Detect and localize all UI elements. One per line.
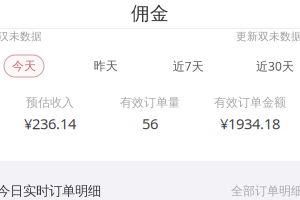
staticText: 昨天 (94, 59, 118, 73)
staticText: 今天 (12, 59, 36, 73)
button[interactable]: 近30天 (251, 55, 299, 77)
staticText: 汉未数据 (0, 30, 42, 43)
button[interactable]: 今天 (4, 55, 44, 77)
staticText: 预估收入 (26, 95, 74, 110)
staticText: 近30天 (256, 58, 294, 74)
staticText: ¥1934.18 (220, 114, 280, 133)
staticText: ¥236.14 (24, 114, 76, 133)
staticText: 更新双未数据 (236, 30, 300, 43)
staticText: 近7天 (173, 58, 204, 74)
button[interactable]: 昨天 (86, 55, 126, 77)
staticText: 56 (142, 114, 158, 133)
staticText: 佣金 (131, 2, 169, 25)
staticText: 全部订单明细 (231, 184, 300, 198)
button[interactable]: 近7天 (167, 55, 209, 77)
staticText: 有效订单量 (120, 95, 180, 110)
staticText: 有效订单金额 (214, 95, 286, 110)
staticText: 今日实时订单明细 (0, 183, 101, 199)
button[interactable]: 全部订单明细 (228, 184, 300, 198)
